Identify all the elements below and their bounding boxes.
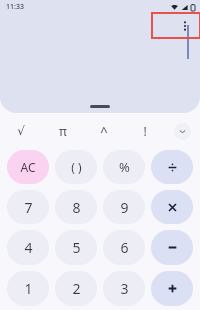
staticText: π (59, 123, 67, 139)
staticText: 11:33 (6, 2, 24, 12)
button[interactable]: 7 (7, 190, 49, 224)
button[interactable]: Show more functions (174, 123, 191, 140)
button[interactable] (151, 150, 193, 184)
button[interactable]: Expand history (0, 99, 200, 113)
staticText: √ (17, 124, 25, 138)
staticText: ( ) (71, 159, 82, 175)
staticText: 6 (120, 238, 129, 257)
button[interactable]: ( ) (55, 150, 97, 184)
button[interactable]: 3 (103, 271, 145, 306)
staticText: AC (20, 159, 36, 175)
staticText: 3 (120, 279, 129, 298)
staticText: 2 (72, 279, 81, 298)
button[interactable]: % (103, 150, 145, 184)
button[interactable]: π (42, 116, 83, 146)
button[interactable] (151, 271, 193, 306)
button[interactable]: 9 (103, 190, 145, 224)
button[interactable]: 1 (7, 271, 49, 306)
button[interactable] (151, 190, 193, 224)
button[interactable]: 4 (7, 230, 49, 265)
staticText: % (119, 158, 130, 176)
staticText: ^ (100, 122, 108, 140)
button[interactable]: ! (124, 116, 165, 146)
button[interactable]: ^ (83, 116, 124, 146)
button[interactable]: 6 (103, 230, 145, 265)
button[interactable]: AC (7, 150, 49, 184)
staticText: 9 (120, 198, 129, 217)
button[interactable]: More options (173, 14, 197, 38)
button[interactable]: 2 (55, 271, 97, 306)
button[interactable] (151, 230, 193, 265)
staticText: 5 (72, 238, 81, 257)
button[interactable]: 5 (55, 230, 97, 265)
staticText: 7 (24, 198, 33, 217)
button[interactable]: √ (0, 116, 42, 146)
staticText: 8 (72, 198, 81, 217)
button[interactable]: 8 (55, 190, 97, 224)
staticText: 1 (24, 279, 33, 298)
staticText: ! (143, 123, 147, 139)
staticText: 4 (24, 238, 33, 257)
